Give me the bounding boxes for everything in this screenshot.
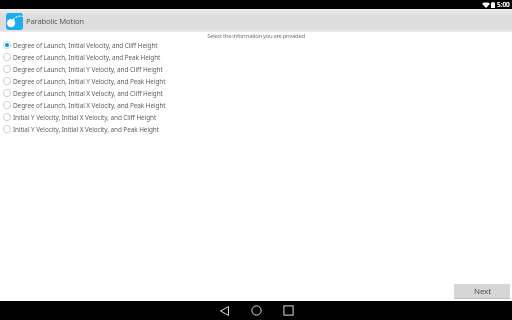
button[interactable]: Degree of Launch, Initial X Velocity, an…: [0, 99, 512, 111]
button[interactable]: Degree of Launch, Initial X Velocity, an…: [0, 87, 512, 99]
staticText: Degree of Launch, Initial Velocity, and …: [13, 41, 158, 50]
button[interactable]: Recents: [272, 301, 304, 320]
button[interactable]: Degree of Launch, Initial Y Velocity, an…: [0, 63, 512, 75]
button[interactable]: Initial Y Velocity, Initial X Velocity, …: [0, 111, 512, 123]
button[interactable]: Home: [240, 301, 272, 320]
staticText: 5:00: [497, 0, 510, 8]
staticText: Select the information you are provided: [0, 32, 512, 40]
staticText: Degree of Launch, Initial Y Velocity, an…: [13, 77, 166, 86]
staticText: Next: [474, 286, 491, 297]
button[interactable]: Degree of Launch, Initial Velocity, and …: [0, 51, 512, 63]
staticText: Initial Y Velocity, Initial X Velocity, …: [13, 113, 157, 122]
staticText: Degree of Launch, Initial Y Velocity, an…: [13, 65, 163, 74]
staticText: Initial Y Velocity, Initial X Velocity, …: [13, 125, 159, 134]
button[interactable]: Degree of Launch, Initial Y Velocity, an…: [0, 75, 512, 87]
staticText: Degree of Launch, Initial Velocity, and …: [13, 53, 161, 62]
staticText: Degree of Launch, Initial X Velocity, an…: [13, 89, 163, 98]
button[interactable]: Next: [454, 284, 510, 299]
button[interactable]: Initial Y Velocity, Initial X Velocity, …: [0, 123, 512, 135]
button[interactable]: Back: [208, 301, 240, 320]
staticText: Degree of Launch, Initial X Velocity, an…: [13, 101, 166, 110]
button[interactable]: Degree of Launch, Initial Velocity, and …: [0, 39, 512, 51]
staticText: Parabolic Motion: [26, 16, 84, 26]
